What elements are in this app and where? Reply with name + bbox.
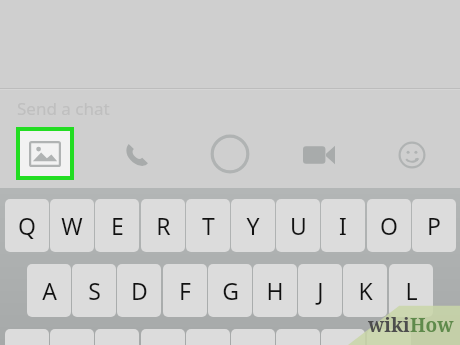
staticText: W [61, 210, 83, 241]
button[interactable]: Video call [300, 136, 338, 174]
button[interactable]: L [389, 264, 433, 317]
staticText: G [222, 275, 239, 306]
button[interactable]: Y [231, 199, 275, 252]
button[interactable]: W [50, 199, 94, 252]
button[interactable]: S [72, 264, 116, 317]
button[interactable] [141, 329, 185, 345]
staticText: E [111, 210, 124, 241]
button[interactable] [321, 329, 365, 345]
button[interactable] [367, 329, 411, 345]
button[interactable]: G [208, 264, 252, 317]
button[interactable]: K [343, 264, 387, 317]
staticText: wiki [368, 312, 410, 338]
staticText: How [410, 312, 454, 338]
button[interactable]: F [163, 264, 207, 317]
button[interactable]: E [95, 199, 139, 252]
button[interactable] [50, 329, 94, 345]
button[interactable]: Camera [209, 133, 251, 175]
staticText: Y [246, 210, 260, 241]
button[interactable]: Send a photo [20, 131, 70, 176]
staticText: D [131, 275, 148, 306]
staticText: L [405, 275, 418, 306]
button[interactable]: J [298, 264, 342, 317]
button[interactable]: Q [5, 199, 49, 252]
button[interactable]: H [253, 264, 297, 317]
button[interactable]: O [367, 199, 411, 252]
button[interactable]: T [186, 199, 230, 252]
button[interactable]: P [412, 199, 456, 252]
button[interactable]: U [276, 199, 320, 252]
button[interactable]: R [141, 199, 185, 252]
staticText: U [290, 210, 307, 241]
staticText: Q [18, 210, 36, 241]
button[interactable]: I [321, 199, 365, 252]
staticText: K [358, 275, 373, 306]
staticText: R [156, 210, 171, 241]
staticText: J [317, 275, 324, 306]
button[interactable]: A [27, 264, 71, 317]
staticText: P [427, 210, 441, 241]
button[interactable]: Voice call [118, 135, 156, 173]
staticText: Send a chat [17, 97, 110, 120]
staticText: I [339, 210, 347, 241]
staticText: A [42, 275, 57, 306]
staticText: S [88, 275, 101, 306]
button[interactable] [186, 329, 230, 345]
staticText: T [202, 210, 215, 241]
button[interactable] [231, 329, 275, 345]
staticText: H [266, 275, 284, 306]
button[interactable]: D [117, 264, 161, 317]
button[interactable]: Stickers [393, 136, 431, 174]
button[interactable] [5, 329, 49, 345]
staticText: O [380, 210, 398, 241]
staticText: F [179, 275, 191, 306]
button[interactable] [95, 329, 139, 345]
button[interactable] [276, 329, 320, 345]
